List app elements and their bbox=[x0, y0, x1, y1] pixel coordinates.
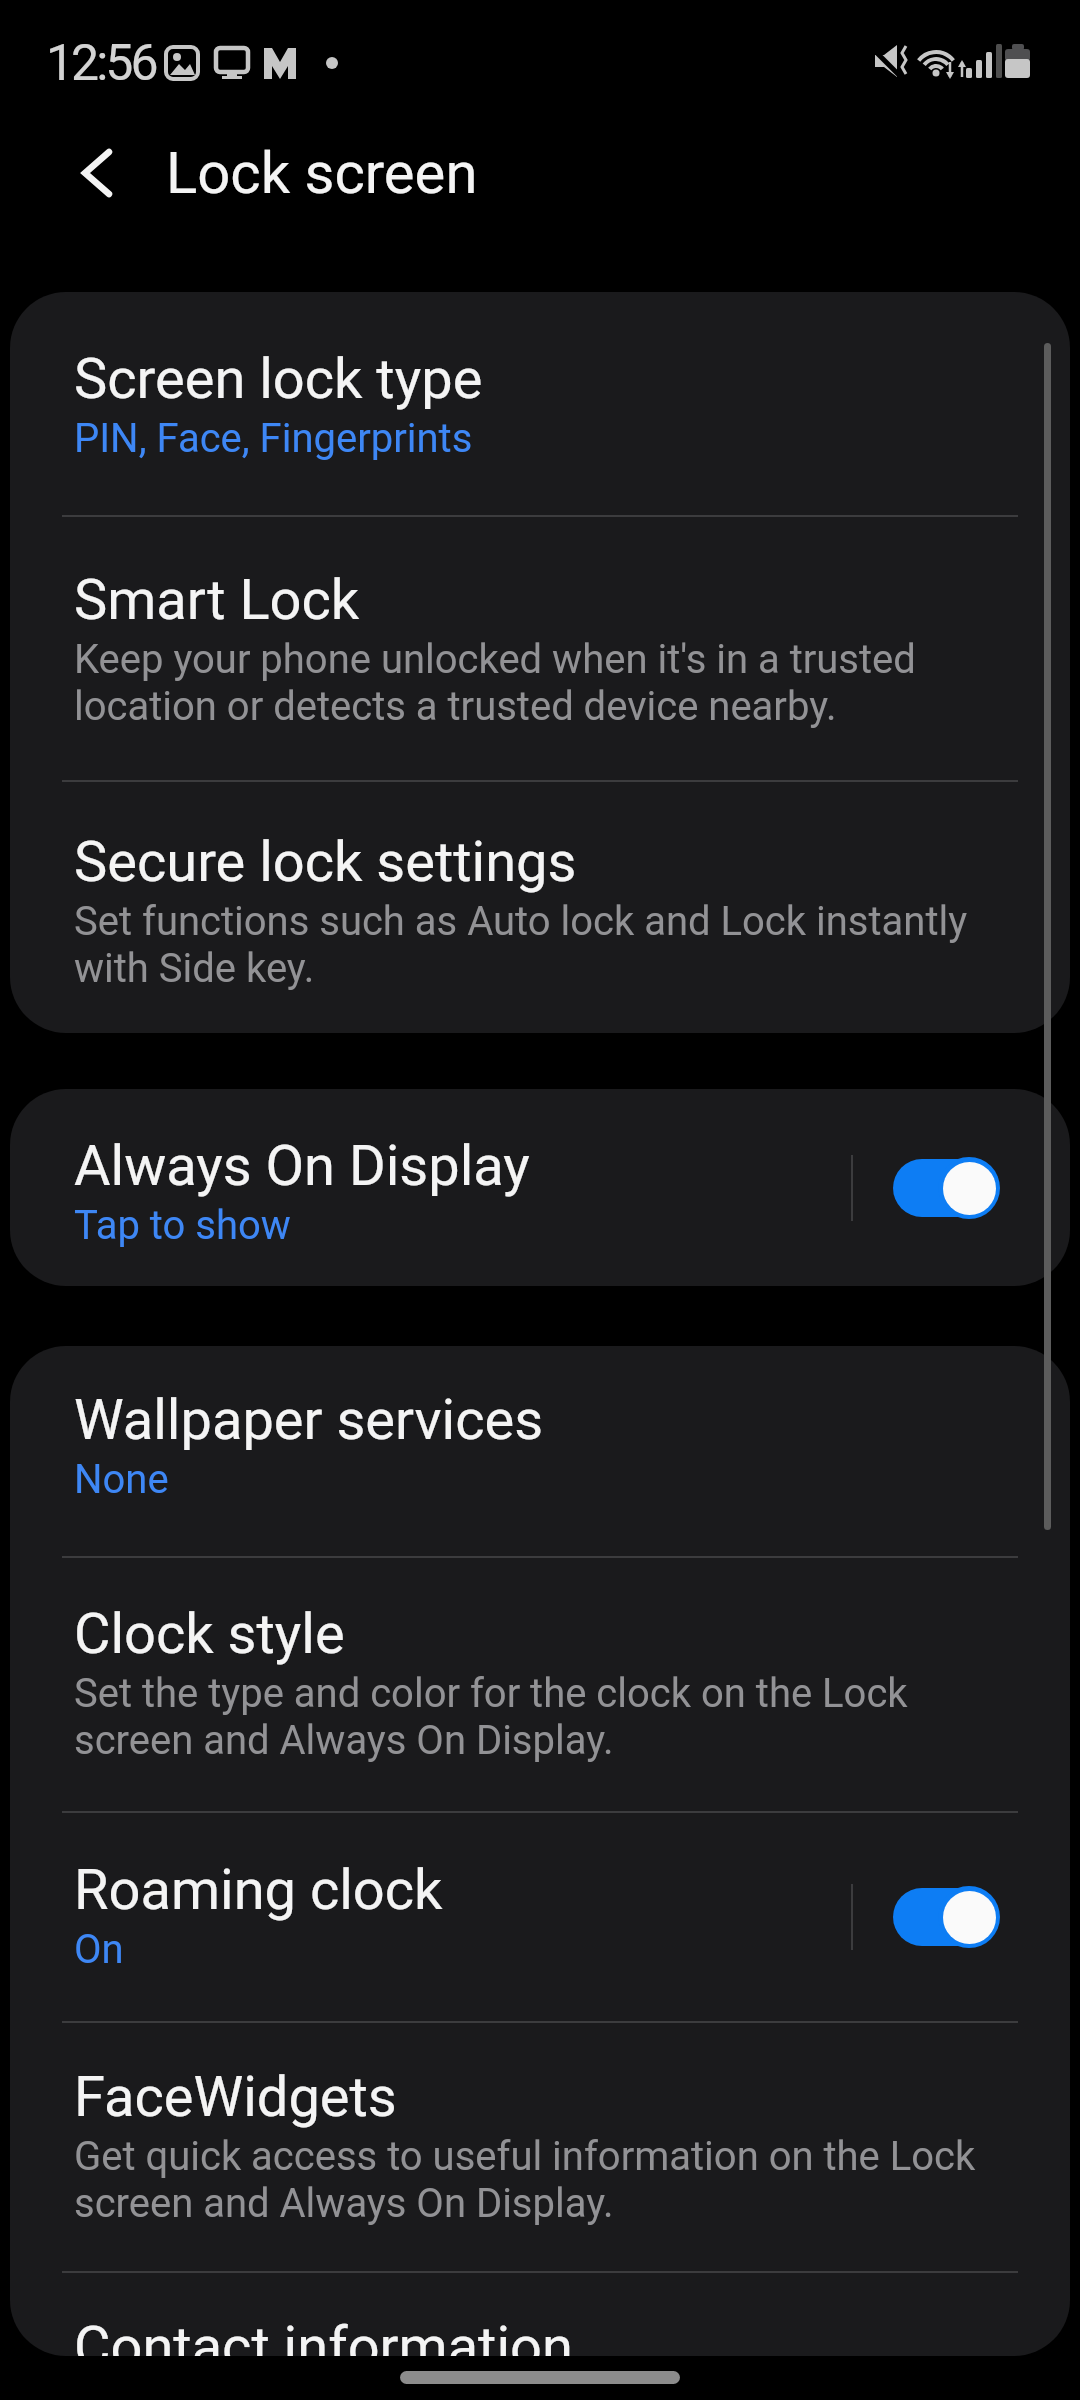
staticText: Contact information bbox=[74, 2314, 573, 2356]
button[interactable] bbox=[62, 143, 132, 213]
button[interactable]: Contact information bbox=[10, 2273, 1070, 2356]
staticText: Set the type and color for the clock on … bbox=[74, 1670, 908, 1764]
staticText: Get quick access to useful information o… bbox=[74, 2133, 976, 2227]
button[interactable]: Screen lock type bbox=[10, 292, 1070, 515]
staticText: FaceWidgets bbox=[74, 2064, 397, 2130]
staticText: 12:56 bbox=[46, 34, 156, 93]
staticText: Wallpaper services bbox=[74, 1387, 544, 1453]
staticText: On bbox=[74, 1926, 124, 1973]
staticText: Set functions such as Auto lock and Lock… bbox=[74, 898, 968, 992]
button[interactable] bbox=[400, 2371, 680, 2384]
button[interactable] bbox=[893, 1886, 1000, 1948]
staticText: None bbox=[74, 1456, 169, 1503]
button[interactable] bbox=[893, 1157, 1000, 1219]
button[interactable]: Smart Lock bbox=[10, 517, 1070, 780]
staticText: Screen lock type bbox=[74, 346, 483, 412]
staticText: Lock screen bbox=[166, 139, 478, 207]
button[interactable]: Always On Display bbox=[10, 1089, 1070, 1286]
button[interactable]: Wallpaper services bbox=[10, 1346, 1070, 1556]
staticText: Roaming clock bbox=[74, 1857, 443, 1923]
button[interactable]: Secure lock settings bbox=[10, 782, 1070, 1033]
staticText: Clock style bbox=[74, 1601, 345, 1667]
staticText: Secure lock settings bbox=[74, 829, 577, 895]
staticText: Always On Display bbox=[74, 1133, 530, 1199]
staticText: Smart Lock bbox=[74, 567, 360, 633]
staticText: PIN, Face, Fingerprints bbox=[74, 415, 473, 462]
button[interactable]: Roaming clock bbox=[10, 1813, 1070, 2021]
button[interactable]: Clock style bbox=[10, 1558, 1070, 1811]
button[interactable]: FaceWidgets bbox=[10, 2023, 1070, 2271]
staticText: Keep your phone unlocked when it's in a … bbox=[74, 636, 916, 730]
staticText: Tap to show bbox=[74, 1202, 291, 1249]
